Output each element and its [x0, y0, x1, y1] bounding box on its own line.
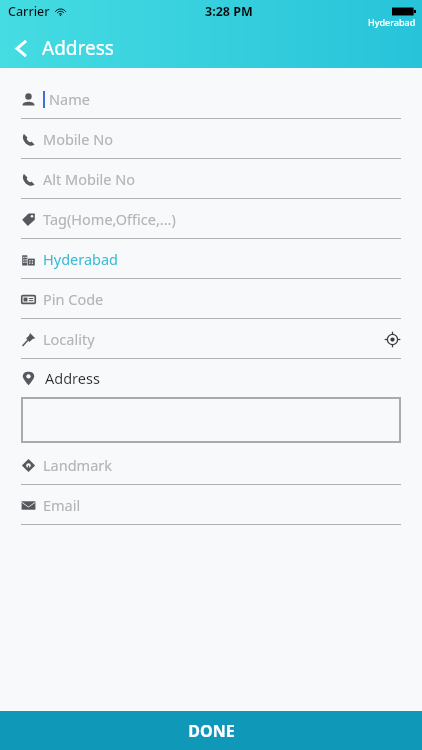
- button[interactable]: Landmark: [0, 445, 422, 485]
- button[interactable]: Hyderabad: [0, 239, 422, 279]
- staticText: Carrier: [8, 3, 50, 20]
- button[interactable]: Mobile No: [0, 119, 422, 159]
- staticText: Hyderabad: [368, 16, 416, 28]
- staticText: Tag(Home,Office,...): [43, 209, 176, 229]
- staticText: DONE: [188, 720, 235, 742]
- button[interactable]: Email: [0, 485, 422, 525]
- staticText: Mobile No: [43, 129, 114, 149]
- button[interactable]: Locality: [0, 319, 422, 359]
- button[interactable]: Name: [0, 79, 422, 119]
- staticText: Address: [45, 368, 100, 388]
- button[interactable]: Back: [12, 30, 114, 66]
- staticText: Locality: [43, 329, 95, 349]
- button[interactable]: Pin Code: [0, 279, 422, 319]
- staticText: Alt Mobile No: [43, 169, 136, 189]
- button[interactable]: [21, 397, 401, 443]
- staticText: Landmark: [43, 455, 113, 475]
- staticText: Address: [42, 35, 114, 61]
- staticText: 3:28 PM: [205, 3, 253, 20]
- staticText: Email: [43, 495, 81, 515]
- other: Back: [12, 39, 31, 58]
- staticText: Pin Code: [43, 289, 104, 309]
- other: Use current location: [384, 331, 401, 348]
- button[interactable]: Alt Mobile No: [0, 159, 422, 199]
- staticText: Hyderabad: [43, 249, 119, 269]
- button[interactable]: Tag(Home,Office,...): [0, 199, 422, 239]
- button[interactable]: DONE: [0, 711, 422, 750]
- staticText: Name: [49, 89, 90, 109]
